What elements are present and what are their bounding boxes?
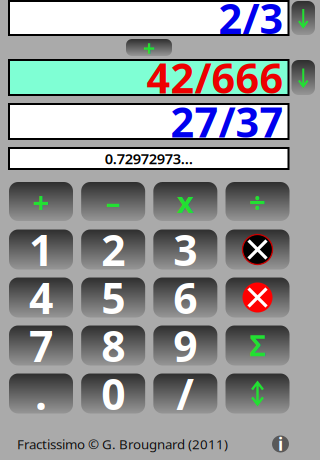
- staticText: 5: [101, 269, 125, 326]
- button[interactable]: Copy down: [291, 1, 315, 35]
- staticText: +: [143, 33, 155, 62]
- button[interactable]: [81, 325, 145, 365]
- staticText: 42/666: [146, 50, 283, 105]
- staticText: 2/3: [218, 0, 283, 45]
- button[interactable]: [153, 373, 217, 413]
- staticText: 6: [173, 269, 197, 326]
- staticText: +: [32, 182, 49, 221]
- button[interactable]: [9, 229, 73, 269]
- staticText: –: [106, 182, 121, 221]
- button[interactable]: [153, 277, 217, 317]
- staticText: x: [177, 182, 194, 221]
- staticText: 3: [173, 221, 197, 278]
- staticText: Fractissimo © G. Brougnard (2011): [17, 435, 228, 453]
- button[interactable]: [81, 373, 145, 413]
- button[interactable]: Clear: [225, 277, 289, 317]
- staticText: 9: [173, 317, 197, 374]
- button[interactable]: [9, 277, 73, 317]
- staticText: 0: [101, 365, 125, 422]
- button[interactable]: [9, 325, 73, 365]
- button[interactable]: [153, 325, 217, 365]
- staticText: /: [176, 365, 194, 422]
- button[interactable]: [9, 373, 73, 413]
- staticText: 8: [101, 317, 125, 374]
- button[interactable]: Operation: [126, 39, 172, 56]
- staticText: Σ: [249, 327, 265, 364]
- button[interactable]: Divide: [225, 182, 289, 221]
- staticText: .: [35, 365, 47, 422]
- button[interactable]: Add: [9, 182, 73, 221]
- staticText: 2: [101, 221, 125, 278]
- button[interactable]: [81, 277, 145, 317]
- staticText: 27/37: [170, 94, 283, 149]
- staticText: 4: [29, 269, 53, 326]
- staticText: 1: [29, 221, 53, 278]
- button[interactable]: About: [272, 435, 289, 452]
- button[interactable]: [153, 229, 217, 269]
- staticText: 7: [29, 317, 53, 374]
- staticText: 0.72972973…: [105, 149, 193, 168]
- button[interactable]: Delete: [225, 229, 289, 269]
- button[interactable]: Swap: [225, 373, 289, 413]
- button[interactable]: Copy down: [291, 60, 315, 95]
- button[interactable]: Subtract: [81, 182, 145, 221]
- staticText: i: [278, 432, 283, 455]
- staticText: ÷: [249, 182, 266, 221]
- button[interactable]: Sum: [225, 325, 289, 365]
- button[interactable]: [81, 229, 145, 269]
- button[interactable]: Multiply: [153, 182, 217, 221]
